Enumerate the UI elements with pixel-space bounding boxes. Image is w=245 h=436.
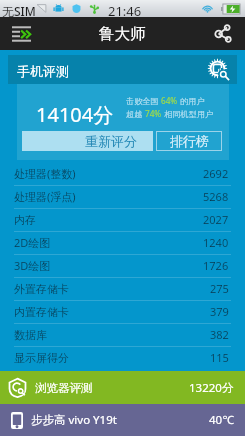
- button[interactable]: 外置存储卡: [0, 277, 245, 300]
- button[interactable]: Menu: [0, 17, 42, 50]
- button[interactable]: Share: [201, 17, 245, 50]
- staticText: 相同机型用户: [162, 108, 214, 119]
- staticText: 内存: [14, 213, 36, 227]
- button[interactable]: 重新评分: [22, 131, 153, 151]
- staticText: 64%: [161, 95, 178, 106]
- staticText: 显示屏得分: [14, 351, 69, 365]
- staticText: 5268: [203, 189, 229, 204]
- staticText: 2D绘图: [14, 235, 51, 250]
- staticText: 处理器(整数): [14, 166, 76, 181]
- staticText: 的用户: [178, 95, 205, 106]
- staticText: 处理器(浮点): [14, 189, 76, 204]
- staticText: 1240: [203, 235, 229, 250]
- staticText: 115: [210, 350, 229, 365]
- staticText: 2692: [203, 166, 229, 181]
- staticText: 超越: [126, 108, 145, 119]
- button[interactable]: 2D绘图: [0, 231, 245, 254]
- button[interactable]: 显示屏得分: [0, 346, 245, 369]
- button[interactable]: 3D绘图: [0, 254, 245, 277]
- button[interactable]: 内存: [0, 208, 245, 231]
- staticText: 2027: [203, 212, 229, 227]
- staticText: 手机评测: [17, 63, 69, 79]
- button[interactable]: 浏览器评测: [0, 371, 245, 404]
- button[interactable]: 处理器(整数): [0, 162, 245, 185]
- staticText: 1726: [203, 258, 229, 273]
- staticText: 382: [210, 327, 229, 342]
- staticText: 击败全国: [126, 95, 161, 106]
- staticText: 3D绘图: [14, 258, 51, 273]
- staticText: 数据库: [14, 328, 47, 342]
- button[interactable]: 处理器(浮点): [0, 185, 245, 208]
- staticText: 275: [210, 281, 229, 296]
- staticText: 鲁大师: [99, 24, 146, 44]
- button[interactable]: 数据库: [0, 323, 245, 346]
- staticText: 379: [210, 304, 229, 319]
- button[interactable]: 排行榜: [156, 131, 222, 151]
- button[interactable]: 步步高 vivo Y19t: [0, 404, 245, 436]
- staticText: 13220分: [189, 380, 234, 396]
- button[interactable]: 内置存储卡: [0, 300, 245, 323]
- staticText: 浏览器评测: [35, 381, 93, 395]
- staticText: 无SIM: [2, 3, 36, 19]
- staticText: 14104分: [36, 101, 114, 128]
- staticText: 21:46: [108, 2, 142, 19]
- staticText: 步步高 vivo Y19t: [31, 412, 117, 428]
- staticText: 排行榜: [170, 133, 209, 149]
- staticText: 外置存储卡: [14, 282, 69, 296]
- staticText: 74%: [145, 108, 162, 119]
- staticText: 内置存储卡: [14, 305, 69, 319]
- staticText: 40℃: [209, 412, 234, 428]
- staticText: 重新评分: [85, 133, 137, 149]
